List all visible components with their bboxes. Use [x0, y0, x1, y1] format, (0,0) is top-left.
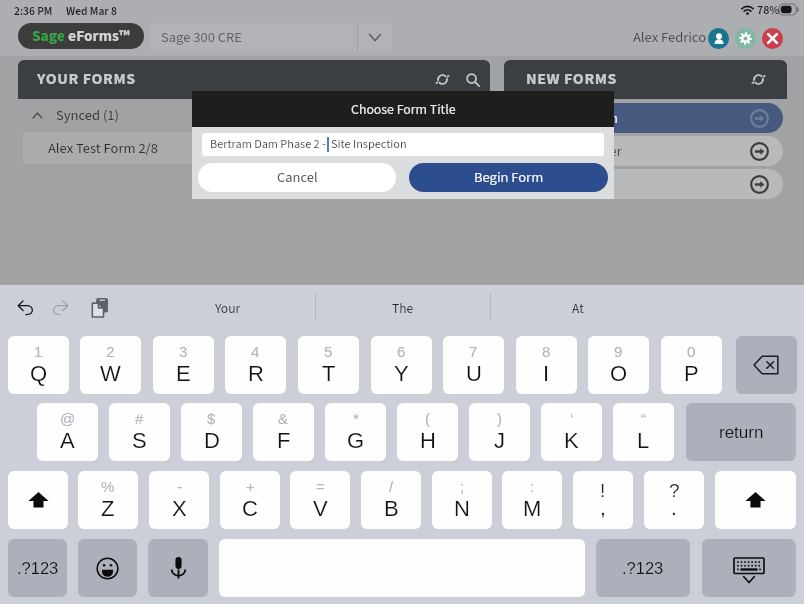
staticText: Purchase Order: [528, 141, 622, 162]
button[interactable]: ): [469, 403, 530, 461]
staticText: J: [494, 428, 505, 453]
button[interactable]: Purchase Order: [508, 136, 783, 166]
button[interactable]: At: [491, 299, 665, 317]
staticText: E: [176, 361, 191, 386]
button[interactable]: return: [686, 403, 796, 461]
button[interactable]: Your: [140, 299, 315, 317]
button[interactable]: 2: [80, 336, 141, 394]
button[interactable]: .?123: [8, 539, 67, 597]
staticText: C: [242, 496, 258, 521]
button[interactable]: !: [573, 471, 633, 529]
staticText: !: [600, 480, 606, 501]
button[interactable]: (: [397, 403, 458, 461]
staticText: Sage: [32, 25, 65, 47]
button[interactable]: Sage 300 CRE: [150, 23, 392, 51]
button[interactable]: ?: [644, 471, 704, 529]
button[interactable]: Bertram Dam Phase 2 -: [202, 133, 604, 156]
staticText: ‘: [570, 410, 574, 427]
button[interactable]: 8: [516, 336, 577, 394]
button[interactable]: Search: [458, 65, 487, 94]
staticText: “: [641, 410, 646, 427]
staticText: S: [132, 428, 147, 453]
button[interactable]: %: [78, 471, 138, 529]
button[interactable]: Refresh forms: [428, 65, 457, 94]
staticText: Synced (1): [56, 105, 119, 126]
button[interactable]: 5: [298, 336, 359, 394]
button[interactable]: :: [502, 471, 562, 529]
button[interactable]: 1: [8, 336, 69, 394]
button[interactable]: -: [149, 471, 209, 529]
button[interactable]: Begin Form: [409, 163, 608, 192]
staticText: 5: [324, 343, 333, 360]
button[interactable]: Account: [708, 28, 729, 49]
staticText: Wed Mar 8: [66, 3, 117, 19]
staticText: H: [420, 428, 436, 453]
staticText: &: [278, 410, 289, 427]
staticText: K: [564, 428, 579, 453]
button[interactable]: Close: [762, 28, 783, 49]
staticText: U: [466, 361, 482, 386]
button[interactable]: Redo: [48, 295, 72, 319]
button[interactable]: Shift: [715, 471, 796, 529]
button[interactable]: Site Inspection: [508, 103, 783, 133]
button[interactable]: 6: [371, 336, 432, 394]
staticText: .: [671, 496, 677, 519]
button[interactable]: Shift: [8, 471, 68, 529]
staticText: Your: [215, 299, 241, 317]
button[interactable]: $: [181, 403, 242, 461]
button[interactable]: 4: [225, 336, 286, 394]
staticText: P: [684, 361, 699, 386]
button[interactable]: Daily Report: [508, 169, 783, 199]
button[interactable]: Paste: [88, 295, 112, 319]
staticText: Choose Form Title: [351, 100, 456, 120]
staticText: L: [637, 428, 650, 453]
button[interactable]: +: [220, 471, 280, 529]
staticText: .?123: [622, 559, 664, 577]
button[interactable]: Sage: [18, 23, 144, 49]
button[interactable]: =: [290, 471, 350, 529]
staticText: ?: [669, 480, 680, 501]
button[interactable]: Hide keyboard: [702, 539, 796, 597]
staticText: 78%: [757, 2, 780, 19]
staticText: Q: [30, 361, 48, 386]
staticText: 9: [614, 343, 623, 360]
button[interactable]: 0: [661, 336, 722, 394]
button[interactable]: ‘: [541, 403, 602, 461]
staticText: =: [316, 478, 325, 495]
button[interactable]: #: [109, 403, 170, 461]
staticText: #: [135, 410, 144, 427]
button[interactable]: Alex Test Form 2/8: [23, 132, 485, 164]
button[interactable]: “: [613, 403, 674, 461]
staticText: :: [530, 478, 535, 495]
staticText: YOUR FORMS: [37, 68, 136, 91]
button[interactable]: The: [316, 299, 490, 317]
staticText: Site Inspection: [528, 108, 618, 129]
staticText: *: [353, 410, 359, 427]
button[interactable]: Refresh new forms: [744, 65, 773, 94]
button[interactable]: &: [253, 403, 314, 461]
button[interactable]: Cancel: [198, 163, 396, 192]
button[interactable]: @: [37, 403, 98, 461]
button[interactable]: 9: [588, 336, 649, 394]
staticText: D: [204, 428, 220, 453]
button[interactable]: .?123: [596, 539, 690, 597]
button[interactable]: ;: [432, 471, 492, 529]
button[interactable]: *: [325, 403, 386, 461]
button[interactable]: Backspace: [736, 336, 797, 394]
button[interactable]: Settings: [735, 28, 756, 49]
staticText: Cancel: [277, 167, 318, 188]
staticText: return: [719, 423, 764, 442]
button[interactable]: Synced (1): [18, 99, 490, 132]
button[interactable]: Undo: [13, 295, 37, 319]
button[interactable]: Dictate: [148, 539, 208, 597]
staticText: Sage 300 CRE: [161, 27, 242, 48]
button[interactable]: /: [361, 471, 421, 529]
button[interactable]: 3: [153, 336, 214, 394]
button[interactable]: Emoji: [78, 539, 137, 597]
staticText: 2: [106, 343, 115, 360]
staticText: Bertram Dam Phase 2 -: [210, 136, 329, 153]
button[interactable]: 7: [443, 336, 504, 394]
staticText: %: [101, 478, 115, 495]
staticText: 8: [542, 343, 551, 360]
